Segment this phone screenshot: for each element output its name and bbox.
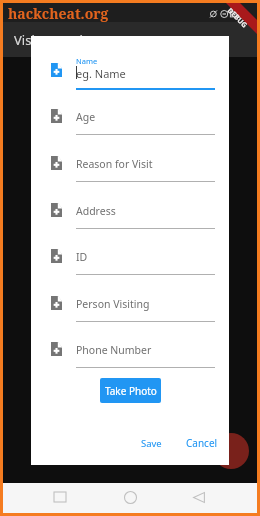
staticText: Take Photo (105, 384, 157, 398)
staticText: Visitor Register (14, 31, 107, 49)
button[interactable]: Home (117, 484, 143, 510)
staticText: Phone Number (76, 343, 152, 357)
button[interactable]: Name (31, 43, 229, 89)
button[interactable]: Reason for Visit (31, 136, 229, 182)
staticText: hackcheat.org (8, 4, 109, 23)
staticText: Save (141, 437, 162, 450)
button[interactable]: Address (31, 183, 229, 229)
staticText: DEBUG (225, 6, 250, 31)
staticText: Cancel (186, 436, 218, 450)
button[interactable]: ID (31, 229, 229, 275)
button[interactable]: Age (31, 89, 229, 135)
button[interactable]: Add visitor (213, 433, 249, 469)
staticText: Age (76, 110, 96, 124)
staticText: Person Visiting (76, 297, 150, 311)
staticText: Name (76, 56, 98, 66)
staticText: eg. Name (76, 66, 126, 81)
button[interactable]: Cancel (181, 433, 223, 453)
button[interactable]: Person Visiting (31, 276, 229, 322)
staticText: Address (76, 204, 116, 218)
button[interactable]: Back (186, 484, 212, 510)
button[interactable]: Take Photo (100, 378, 161, 403)
staticText: ID (76, 250, 88, 264)
button[interactable]: Phone Number (31, 322, 229, 368)
button[interactable]: Save (131, 433, 171, 453)
staticText: Reason for Visit (76, 157, 153, 171)
button[interactable]: Recents (47, 484, 73, 510)
